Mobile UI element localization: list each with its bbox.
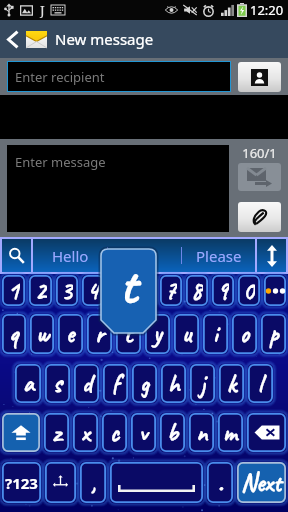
button[interactable]: b: [160, 413, 185, 452]
staticText: i: [213, 318, 218, 350]
button[interactable]: a: [15, 364, 41, 403]
staticText: o: [240, 318, 249, 350]
button[interactable]: [264, 275, 286, 306]
button[interactable]: 9: [212, 275, 234, 306]
button[interactable]: d: [74, 364, 99, 403]
button[interactable]: l: [248, 364, 273, 403]
staticText: h: [168, 368, 180, 400]
staticText: u: [182, 318, 192, 350]
staticText: w: [36, 318, 49, 350]
staticText: 0: [243, 275, 255, 306]
staticText: d: [82, 368, 92, 400]
staticText: v: [139, 417, 148, 449]
button[interactable]: x: [73, 413, 98, 452]
button[interactable]: 5: [108, 275, 130, 306]
button[interactable]: Please: [182, 239, 255, 272]
staticText: s: [53, 368, 62, 400]
button[interactable]: q: [2, 314, 26, 354]
button[interactable]: [108, 239, 181, 272]
staticText: 2: [35, 275, 47, 306]
staticText: New message: [55, 29, 154, 49]
staticText: ?123: [5, 473, 38, 493]
staticText: y: [153, 318, 162, 350]
staticText: r: [95, 318, 105, 350]
staticText: l: [258, 368, 263, 400]
staticText: t: [124, 318, 133, 350]
button[interactable]: Enter message: [7, 145, 229, 232]
staticText: x: [81, 417, 90, 449]
button[interactable]: .: [207, 462, 233, 503]
button[interactable]: 6: [134, 275, 156, 306]
staticText: J: [40, 1, 45, 19]
button[interactable]: 2: [29, 275, 52, 306]
staticText: 7: [165, 275, 177, 306]
staticText: 9: [217, 275, 229, 306]
button[interactable]: o: [232, 314, 257, 354]
staticText: ,: [91, 467, 96, 499]
button[interactable]: t: [116, 314, 141, 354]
button[interactable]: Space: [110, 462, 203, 503]
button[interactable]: Attach: [238, 202, 281, 232]
button[interactable]: More suggestions: [257, 239, 286, 272]
button[interactable]: 3: [56, 275, 78, 306]
button[interactable]: Move cursor: [45, 462, 76, 503]
button[interactable]: Back: [0, 20, 26, 58]
staticText: 12:20: [250, 1, 284, 19]
button[interactable]: 1: [2, 275, 25, 306]
button[interactable]: r: [87, 314, 112, 354]
button[interactable]: z: [44, 413, 69, 452]
button[interactable]: 7: [160, 275, 182, 306]
button[interactable]: ,: [80, 462, 106, 503]
staticText: f: [112, 368, 120, 400]
button[interactable]: Enter recipient: [7, 61, 231, 92]
staticText: c: [110, 417, 119, 449]
staticText: 1: [8, 275, 20, 306]
button[interactable]: f: [103, 364, 128, 403]
staticText: a: [23, 368, 34, 400]
staticText: .: [218, 467, 223, 499]
staticText: Please: [196, 246, 242, 266]
staticText: 8: [191, 275, 203, 306]
button[interactable]: Next: [237, 462, 286, 503]
button[interactable]: Search: [2, 239, 31, 272]
button[interactable]: p: [261, 314, 286, 354]
staticText: z: [53, 417, 61, 449]
button[interactable]: m: [218, 413, 243, 452]
button[interactable]: Backspace: [247, 413, 286, 452]
button[interactable]: k: [219, 364, 244, 403]
button[interactable]: Hello: [33, 239, 107, 272]
button[interactable]: y: [145, 314, 170, 354]
button[interactable]: j: [190, 364, 215, 403]
staticText: t: [120, 255, 137, 318]
staticText: k: [227, 368, 237, 400]
button[interactable]: v: [131, 413, 156, 452]
staticText: g: [140, 368, 149, 400]
staticText: e: [66, 318, 75, 350]
staticText: Enter recipient: [15, 68, 105, 86]
button[interactable]: h: [161, 364, 186, 403]
staticText: 160/1: [238, 144, 281, 162]
button[interactable]: ?123: [2, 462, 41, 503]
button[interactable]: Send: [238, 163, 281, 191]
button[interactable]: u: [174, 314, 199, 354]
staticText: q: [9, 318, 19, 350]
button[interactable]: 8: [186, 275, 208, 306]
staticText: 3: [61, 275, 73, 306]
button[interactable]: 4: [82, 275, 104, 306]
staticText: n: [196, 417, 208, 449]
button[interactable]: e: [58, 314, 83, 354]
staticText: b: [167, 417, 178, 449]
staticText: Hello: [52, 246, 89, 266]
button[interactable]: s: [45, 364, 70, 403]
button[interactable]: 0: [238, 275, 260, 306]
staticText: 6: [139, 275, 151, 306]
button[interactable]: Choose contact: [238, 62, 281, 92]
staticText: p: [269, 318, 279, 350]
staticText: Next: [241, 467, 282, 499]
button[interactable]: Shift: [2, 413, 40, 452]
button[interactable]: w: [30, 314, 54, 354]
button[interactable]: i: [203, 314, 228, 354]
button[interactable]: c: [102, 413, 127, 452]
button[interactable]: n: [189, 413, 214, 452]
button[interactable]: g: [132, 364, 157, 403]
